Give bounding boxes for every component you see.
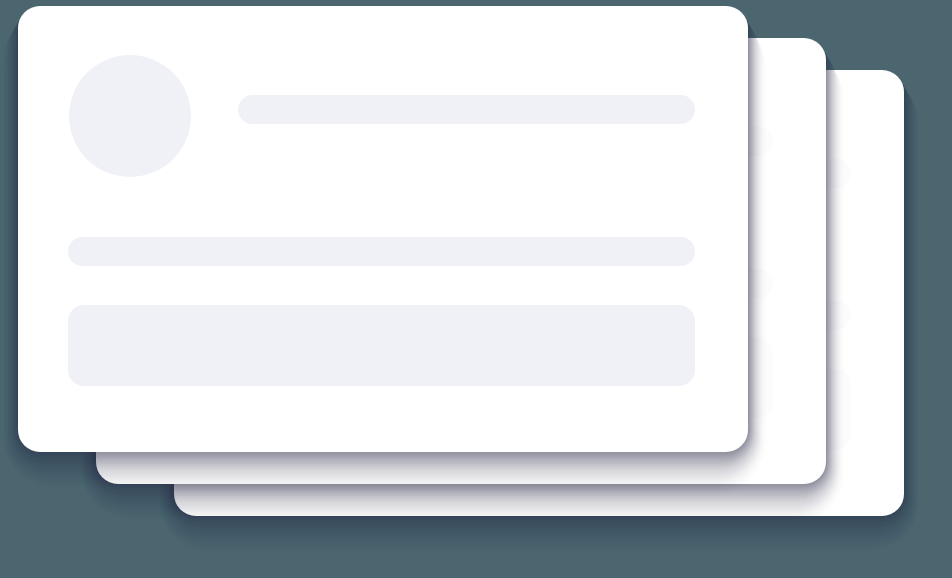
button[interactable]: Loading placeholder cards: [0, 0, 952, 578]
